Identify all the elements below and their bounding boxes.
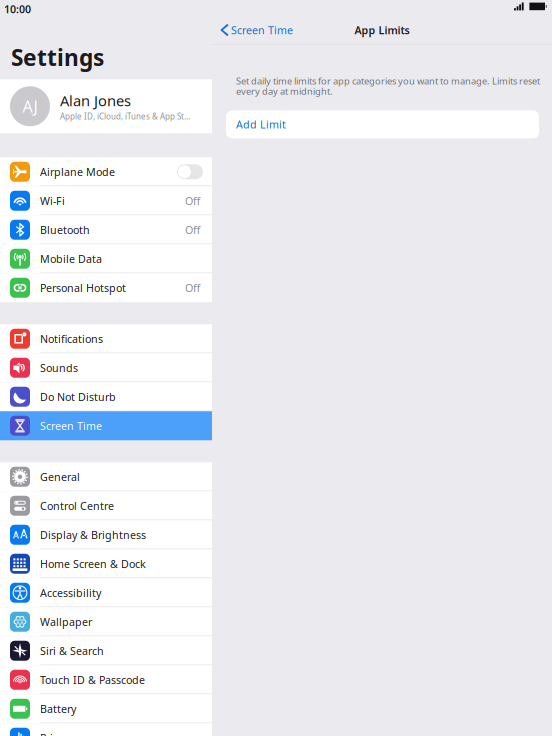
staticText: 10:00	[4, 2, 31, 16]
staticText: Settings	[11, 42, 104, 72]
staticText: Touch ID & Passcode	[40, 673, 145, 687]
staticText: Battery	[40, 702, 76, 716]
staticText: Add Limit	[236, 117, 286, 131]
staticText: Set daily time limits for app categories…	[236, 75, 540, 87]
button[interactable]: Display & Brightness	[0, 520, 212, 549]
staticText: Notifications	[40, 332, 103, 346]
button[interactable]: Touch ID & Passcode	[0, 665, 212, 694]
button[interactable]: Screen Time	[212, 17, 299, 43]
staticText: Off	[185, 223, 200, 237]
button[interactable]: Personal Hotspot	[0, 273, 212, 302]
staticText: every day at midnight.	[236, 85, 333, 97]
button[interactable]: Mobile Data	[0, 244, 212, 273]
button[interactable]: Bluetooth	[0, 215, 212, 244]
button[interactable]: Accessibility	[0, 578, 212, 607]
staticText: Display & Brightness	[40, 528, 146, 542]
staticText: Wi-Fi	[40, 194, 65, 208]
staticText: Home Screen & Dock	[40, 557, 146, 571]
staticText: General	[40, 470, 80, 484]
staticText: Off	[185, 194, 200, 208]
button[interactable]: Privacy	[0, 723, 212, 736]
staticText: Alan Jones	[60, 91, 131, 110]
button[interactable]: Battery	[0, 694, 212, 723]
button[interactable]: AJ	[0, 79, 212, 133]
button[interactable]: Control Centre	[0, 491, 212, 520]
button[interactable]: Sounds	[0, 353, 212, 382]
button[interactable]: Airplane Mode	[0, 157, 212, 186]
button[interactable]: Wi-Fi	[0, 186, 212, 215]
staticText: Personal Hotspot	[40, 281, 126, 295]
staticText: Do Not Disturb	[40, 390, 116, 404]
button[interactable]: Do Not Disturb	[0, 382, 212, 411]
staticText: Control Centre	[40, 499, 114, 513]
staticText: App Limits	[354, 23, 409, 37]
staticText: Screen Time	[231, 23, 293, 37]
staticText: Airplane Mode	[40, 165, 115, 179]
staticText: Bluetooth	[40, 223, 90, 237]
staticText: AJ	[22, 96, 37, 117]
staticText: Screen Time	[40, 419, 102, 433]
staticText: Off	[185, 281, 200, 295]
staticText: Mobile Data	[40, 252, 102, 266]
staticText: Apple ID, iCloud, iTunes & App St…	[60, 111, 190, 122]
staticText: Wallpaper	[40, 615, 92, 629]
button[interactable]: Siri & Search	[0, 636, 212, 665]
button[interactable]: Screen Time	[0, 411, 212, 440]
button[interactable]: Add Limit	[226, 110, 539, 138]
button[interactable]: Wallpaper	[0, 607, 212, 636]
staticText: Siri & Search	[40, 644, 104, 658]
staticText: Sounds	[40, 361, 78, 375]
button[interactable]: General	[0, 462, 212, 491]
button[interactable]: Notifications	[0, 324, 212, 353]
button[interactable]: Home Screen & Dock	[0, 549, 212, 578]
staticText: Privacy	[40, 731, 74, 736]
staticText: Accessibility	[40, 586, 101, 600]
